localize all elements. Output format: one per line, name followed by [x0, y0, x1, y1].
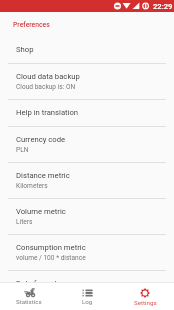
staticText: Liters	[16, 218, 33, 226]
staticText: Log	[82, 298, 93, 305]
button[interactable]: Distance metric	[0, 163, 174, 199]
staticText: Help in translation	[16, 108, 79, 117]
button[interactable]: Help in translation	[0, 100, 174, 127]
button[interactable]: Settings	[116, 283, 174, 310]
staticText: Statistics	[16, 298, 42, 305]
staticText: Shop	[16, 45, 34, 54]
button[interactable]: Shop	[0, 37, 174, 64]
staticText: Settings	[134, 299, 157, 306]
staticText: volume / 100 * distance	[16, 254, 86, 262]
staticText: Distance metric	[16, 171, 70, 180]
button[interactable]: Log	[58, 283, 116, 310]
staticText: PLN	[16, 146, 29, 154]
other: Log	[82, 289, 93, 297]
staticText: Preferences	[13, 21, 50, 29]
other: Settings	[140, 288, 150, 298]
staticText: Kilometers	[16, 182, 48, 190]
staticText: Volume metric	[16, 207, 66, 216]
staticText: Cloud backup is: ON	[16, 83, 76, 91]
button[interactable]: Date format	[0, 271, 174, 282]
button[interactable]: Currency code	[0, 127, 174, 163]
other: Statistics	[24, 288, 35, 297]
button[interactable]: Consumption metric	[0, 235, 174, 271]
staticText: Cloud data backup	[16, 72, 80, 81]
staticText: Date format	[16, 279, 57, 282]
button[interactable]: Volume metric	[0, 199, 174, 235]
button[interactable]: Statistics	[0, 283, 58, 310]
staticText: Currency code	[16, 135, 66, 144]
staticText: 22:29	[153, 2, 173, 11]
staticText: Consumption metric	[16, 243, 86, 252]
button[interactable]: Cloud data backup	[0, 64, 174, 100]
